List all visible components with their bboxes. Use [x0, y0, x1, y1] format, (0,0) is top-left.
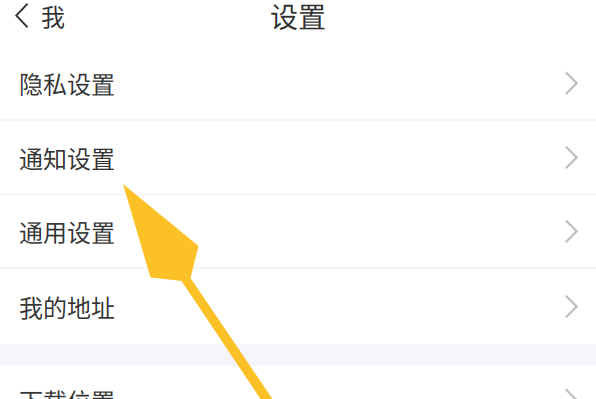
staticText: 通知设置 [19, 140, 115, 175]
staticText: 下载位置 [19, 383, 115, 399]
button[interactable]: 通用设置 [0, 196, 596, 267]
button[interactable]: 返回 我 [0, 0, 75, 47]
button[interactable]: 下载位置 [0, 366, 596, 399]
button[interactable]: 我的地址 [0, 269, 596, 344]
button[interactable]: 通知设置 [0, 121, 596, 194]
staticText: 隐私设置 [19, 66, 115, 101]
staticText: 我 [41, 0, 65, 33]
staticText: 设置 [270, 0, 326, 36]
staticText: 通用设置 [19, 214, 115, 249]
button[interactable]: 隐私设置 [0, 47, 596, 119]
staticText: 我的地址 [19, 289, 115, 324]
